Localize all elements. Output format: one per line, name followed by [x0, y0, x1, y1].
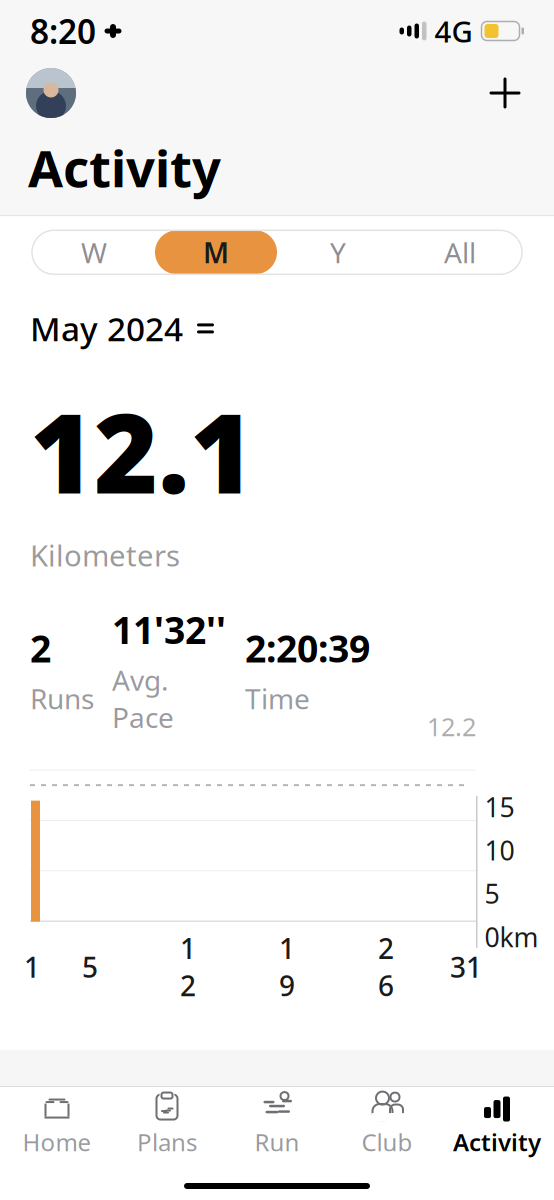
button[interactable]: Activity [442, 1087, 552, 1161]
staticText: 26 [378, 930, 394, 1004]
button[interactable]: All [399, 230, 521, 274]
staticText: 2 [30, 623, 51, 673]
staticText: Activity [28, 134, 221, 201]
staticText: Home [22, 1126, 91, 1158]
button[interactable]: Y [277, 230, 399, 274]
staticText: 0km [484, 919, 538, 954]
staticText: May 2024 [30, 306, 183, 351]
staticText: Run [254, 1126, 299, 1158]
staticText: 5 [484, 876, 499, 911]
button[interactable]: M [155, 230, 277, 274]
staticText: 12 [180, 930, 196, 1004]
button[interactable]: W [33, 230, 155, 274]
staticText: 4G [434, 11, 472, 50]
button[interactable]: Add [482, 70, 528, 116]
staticText: Plans [137, 1126, 197, 1158]
staticText: 11'32'' [112, 605, 226, 654]
button[interactable]: Run [222, 1087, 332, 1161]
staticText: 12.2 [427, 710, 476, 743]
button[interactable]: Plans [112, 1087, 222, 1161]
staticText: 2:20:39 [245, 623, 370, 673]
staticText: Activity [453, 1126, 541, 1158]
button[interactable]: Home [2, 1087, 112, 1161]
staticText: 1 [24, 948, 40, 985]
staticText: Time [245, 680, 310, 717]
staticText: 31 [450, 948, 482, 985]
staticText: Kilometers [30, 536, 180, 575]
staticText: Club [361, 1126, 412, 1158]
staticText: M [203, 234, 229, 271]
staticText: Y [330, 234, 346, 271]
staticText: All [444, 234, 476, 271]
staticText: Avg. Pace [112, 661, 174, 736]
button[interactable]: May 2024 [30, 306, 215, 351]
staticText: Recent Activity [32, 1096, 305, 1144]
staticText: 19 [279, 930, 295, 1004]
button[interactable]: Profile [26, 68, 76, 118]
button[interactable]: Today [32, 1168, 522, 1200]
staticText: 10 [484, 832, 514, 868]
button[interactable]: Club [332, 1087, 442, 1161]
staticText: 12.1 [30, 378, 254, 524]
staticText: 5 [82, 948, 98, 985]
staticText: Runs [30, 680, 94, 717]
staticText: W [81, 234, 107, 271]
staticText: 8:20 [30, 9, 96, 53]
staticText: 15 [484, 789, 514, 824]
